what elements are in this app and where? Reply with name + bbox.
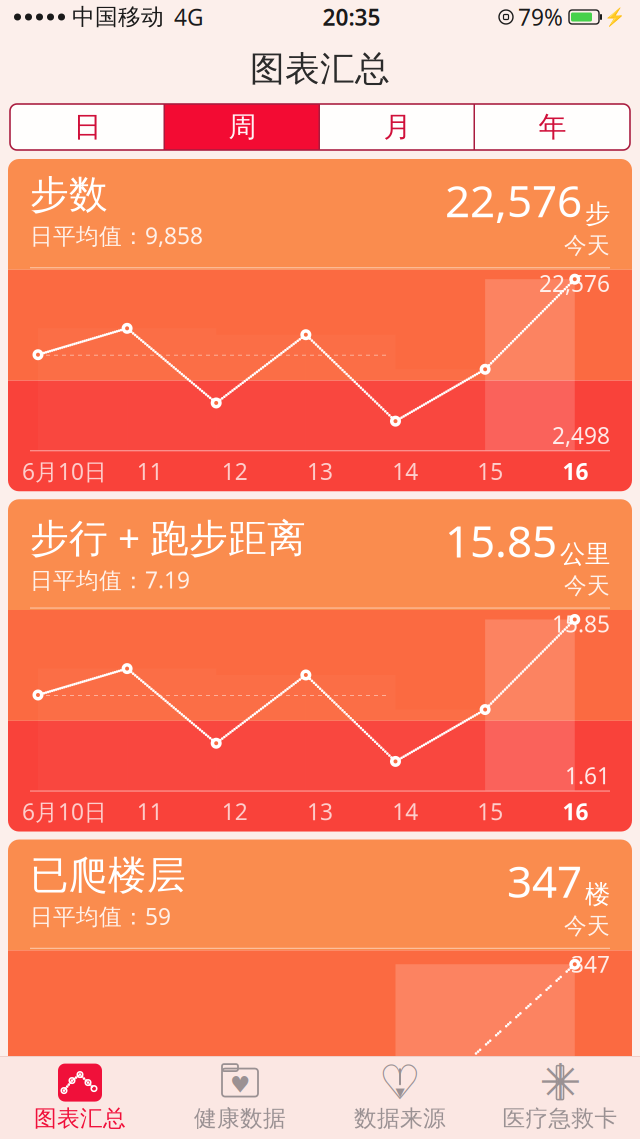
button[interactable]: 月 xyxy=(320,104,475,150)
staticText: 14 xyxy=(392,796,418,827)
staticText: 16 xyxy=(562,796,588,827)
staticText: 今天 xyxy=(564,231,610,259)
staticText: 22,576 xyxy=(445,171,582,229)
staticText: ♥ xyxy=(230,1072,250,1097)
staticText: 图表汇总 xyxy=(34,1105,126,1132)
staticText: 11 xyxy=(137,456,163,486)
staticText: 中国移动 xyxy=(72,3,164,31)
staticText: 图表汇总 xyxy=(250,48,390,90)
staticText: 6月10日 xyxy=(22,796,107,827)
staticText: 347 xyxy=(507,851,582,910)
staticText: 347 xyxy=(571,949,610,979)
button[interactable]: 步数 xyxy=(8,159,632,491)
staticText: ⚡ xyxy=(604,7,626,27)
staticText: 15 xyxy=(477,456,503,486)
staticText: 日 xyxy=(73,110,101,144)
staticText: 月 xyxy=(383,110,411,144)
staticText: ♡ xyxy=(378,1055,421,1110)
staticText: 15.85 xyxy=(552,608,610,639)
staticText: 79% xyxy=(518,2,563,32)
button[interactable]: 已爬楼层 xyxy=(8,839,632,1139)
button[interactable]: ✳ xyxy=(480,1058,640,1138)
staticText: 日平均值：9,858 xyxy=(30,220,203,251)
button[interactable]: ♡ xyxy=(320,1058,480,1138)
staticText: 12 xyxy=(222,796,248,827)
staticText: 步数 xyxy=(30,171,108,218)
staticText: 周 xyxy=(228,110,256,144)
staticText: 16 xyxy=(562,456,588,486)
staticText: 6月10日 xyxy=(22,456,107,486)
staticText: 4G xyxy=(174,2,204,32)
staticText: 今天 xyxy=(564,572,610,599)
button[interactable]: 日 xyxy=(10,104,165,150)
staticText: 20:35 xyxy=(322,2,380,32)
staticText: 日平均值：59 xyxy=(30,901,171,931)
button[interactable]: 年 xyxy=(475,104,630,150)
staticText: 年 xyxy=(538,110,566,144)
staticText: 1.61 xyxy=(565,760,610,790)
staticText: 今天 xyxy=(564,912,610,940)
button[interactable]: 图表汇总 xyxy=(0,1058,160,1138)
staticText: 已爬楼层 xyxy=(30,851,186,899)
staticText: 13 xyxy=(307,456,333,486)
staticText: 14 xyxy=(392,456,418,486)
staticText: 15 xyxy=(477,796,503,827)
staticText: 数据来源 xyxy=(354,1105,446,1132)
staticText: 22,576 xyxy=(539,268,610,298)
staticText: ✳ xyxy=(539,1054,581,1111)
staticText: 健康数据 xyxy=(194,1105,286,1132)
button[interactable]: ♥ xyxy=(160,1058,320,1138)
staticText: 医疗急救卡 xyxy=(502,1105,617,1132)
staticText: 日平均值：7.19 xyxy=(30,565,190,595)
button[interactable]: 步行 + 跑步距离 xyxy=(8,499,632,832)
staticText: 步行 + 跑步距离 xyxy=(30,511,306,563)
staticText: 12 xyxy=(222,456,248,486)
staticText: 13 xyxy=(307,796,333,827)
staticText: 11 xyxy=(137,796,163,827)
staticText: ▼ xyxy=(395,1085,404,1099)
staticText: 公里 xyxy=(560,539,610,570)
button[interactable]: 周 xyxy=(165,104,320,150)
staticText: 2,498 xyxy=(552,420,610,450)
staticText: 15.85 xyxy=(445,511,557,570)
staticText: 步 xyxy=(585,198,610,229)
staticText: 楼 xyxy=(585,879,610,910)
